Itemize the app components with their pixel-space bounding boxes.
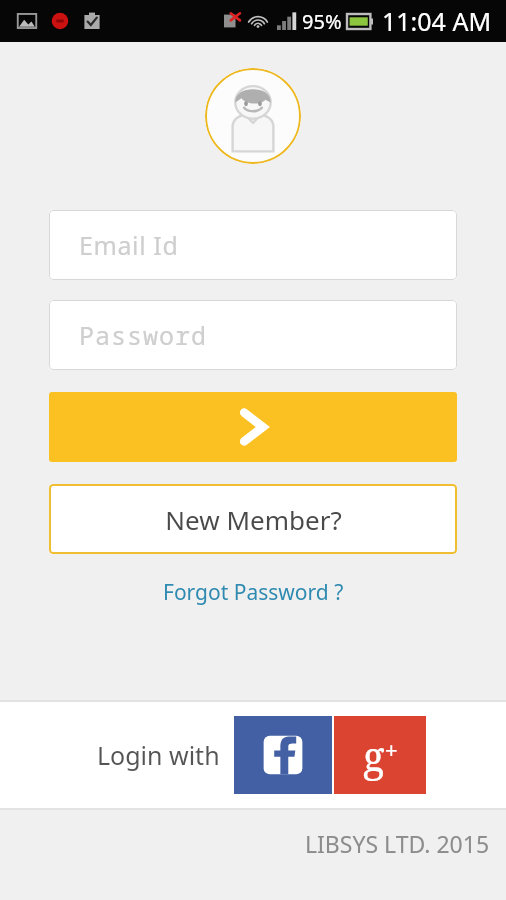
staticText: Login with — [97, 738, 220, 772]
staticText: New Member? — [165, 502, 342, 537]
staticText: Forgot Password ? — [163, 578, 344, 607]
button[interactable]: Login with Google Plus — [334, 716, 426, 794]
button[interactable]: Password — [49, 300, 457, 370]
button[interactable]: Sign in — [49, 392, 457, 462]
other: Profile avatar — [205, 68, 301, 164]
button[interactable]: Login with Facebook — [234, 716, 332, 794]
staticText: 11:04 AM — [382, 4, 492, 38]
staticText: Email Id — [79, 228, 179, 262]
staticText: g — [363, 728, 385, 782]
staticText: 95% — [302, 8, 342, 35]
staticText: Password — [79, 318, 208, 352]
staticText: + — [385, 734, 398, 764]
button[interactable]: Email Id — [49, 210, 457, 280]
staticText: LIBSYS LTD. 2015 — [305, 828, 490, 859]
button[interactable]: Forgot Password ? — [153, 574, 354, 611]
button[interactable]: New Member? — [49, 484, 457, 554]
